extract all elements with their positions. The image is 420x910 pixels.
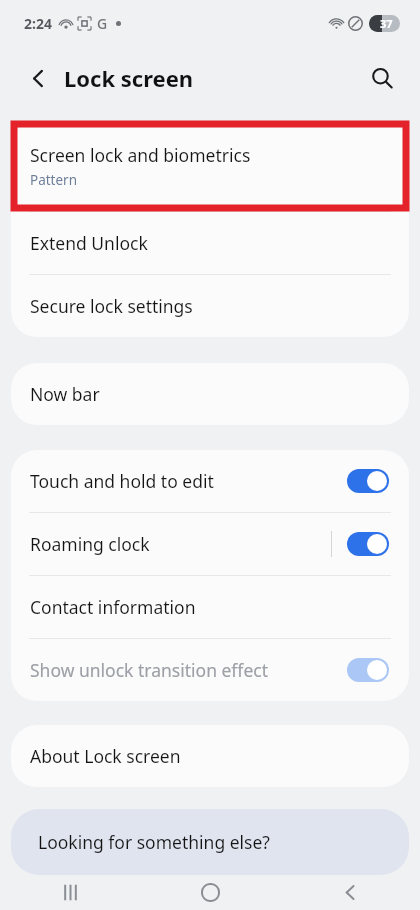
staticText: Lock screen	[64, 63, 194, 93]
staticText: Looking for something else?	[38, 830, 270, 854]
staticText: Roaming clock	[30, 532, 331, 556]
button[interactable]: Touch and hold to edit	[11, 450, 409, 512]
button[interactable]	[347, 658, 389, 682]
button[interactable]	[347, 469, 389, 493]
button[interactable]: Search	[360, 56, 404, 100]
staticText: Screen lock and biometrics	[30, 143, 251, 167]
button[interactable]: Roaming clock	[11, 513, 409, 575]
button[interactable]: Contact information	[11, 576, 409, 638]
staticText: G	[97, 14, 108, 33]
button[interactable]: Looking for something else?	[11, 809, 409, 875]
staticText: Touch and hold to edit	[30, 469, 347, 493]
staticText: About Lock screen	[30, 744, 181, 768]
button[interactable]: Back	[280, 875, 420, 910]
button[interactable]: Screen lock and biometrics	[11, 121, 409, 211]
button[interactable]	[347, 532, 389, 556]
button[interactable]: Back	[18, 58, 58, 98]
button[interactable]: About Lock screen	[11, 725, 409, 787]
button[interactable]: Now bar	[11, 363, 409, 425]
staticText: 37	[380, 16, 393, 31]
button[interactable]: Recent apps	[0, 875, 140, 910]
staticText: Pattern	[30, 171, 78, 189]
staticText: Secure lock settings	[30, 294, 193, 318]
button[interactable]: Show unlock transition effect	[11, 639, 409, 701]
button[interactable]: Home	[140, 875, 280, 910]
button[interactable]: Secure lock settings	[11, 275, 409, 337]
button[interactable]: Extend Unlock	[11, 212, 409, 274]
staticText: Now bar	[30, 382, 100, 406]
staticText: 2:24	[24, 14, 52, 33]
staticText: Extend Unlock	[30, 231, 148, 255]
staticText: Show unlock transition effect	[30, 658, 347, 682]
staticText: Contact information	[30, 595, 196, 619]
